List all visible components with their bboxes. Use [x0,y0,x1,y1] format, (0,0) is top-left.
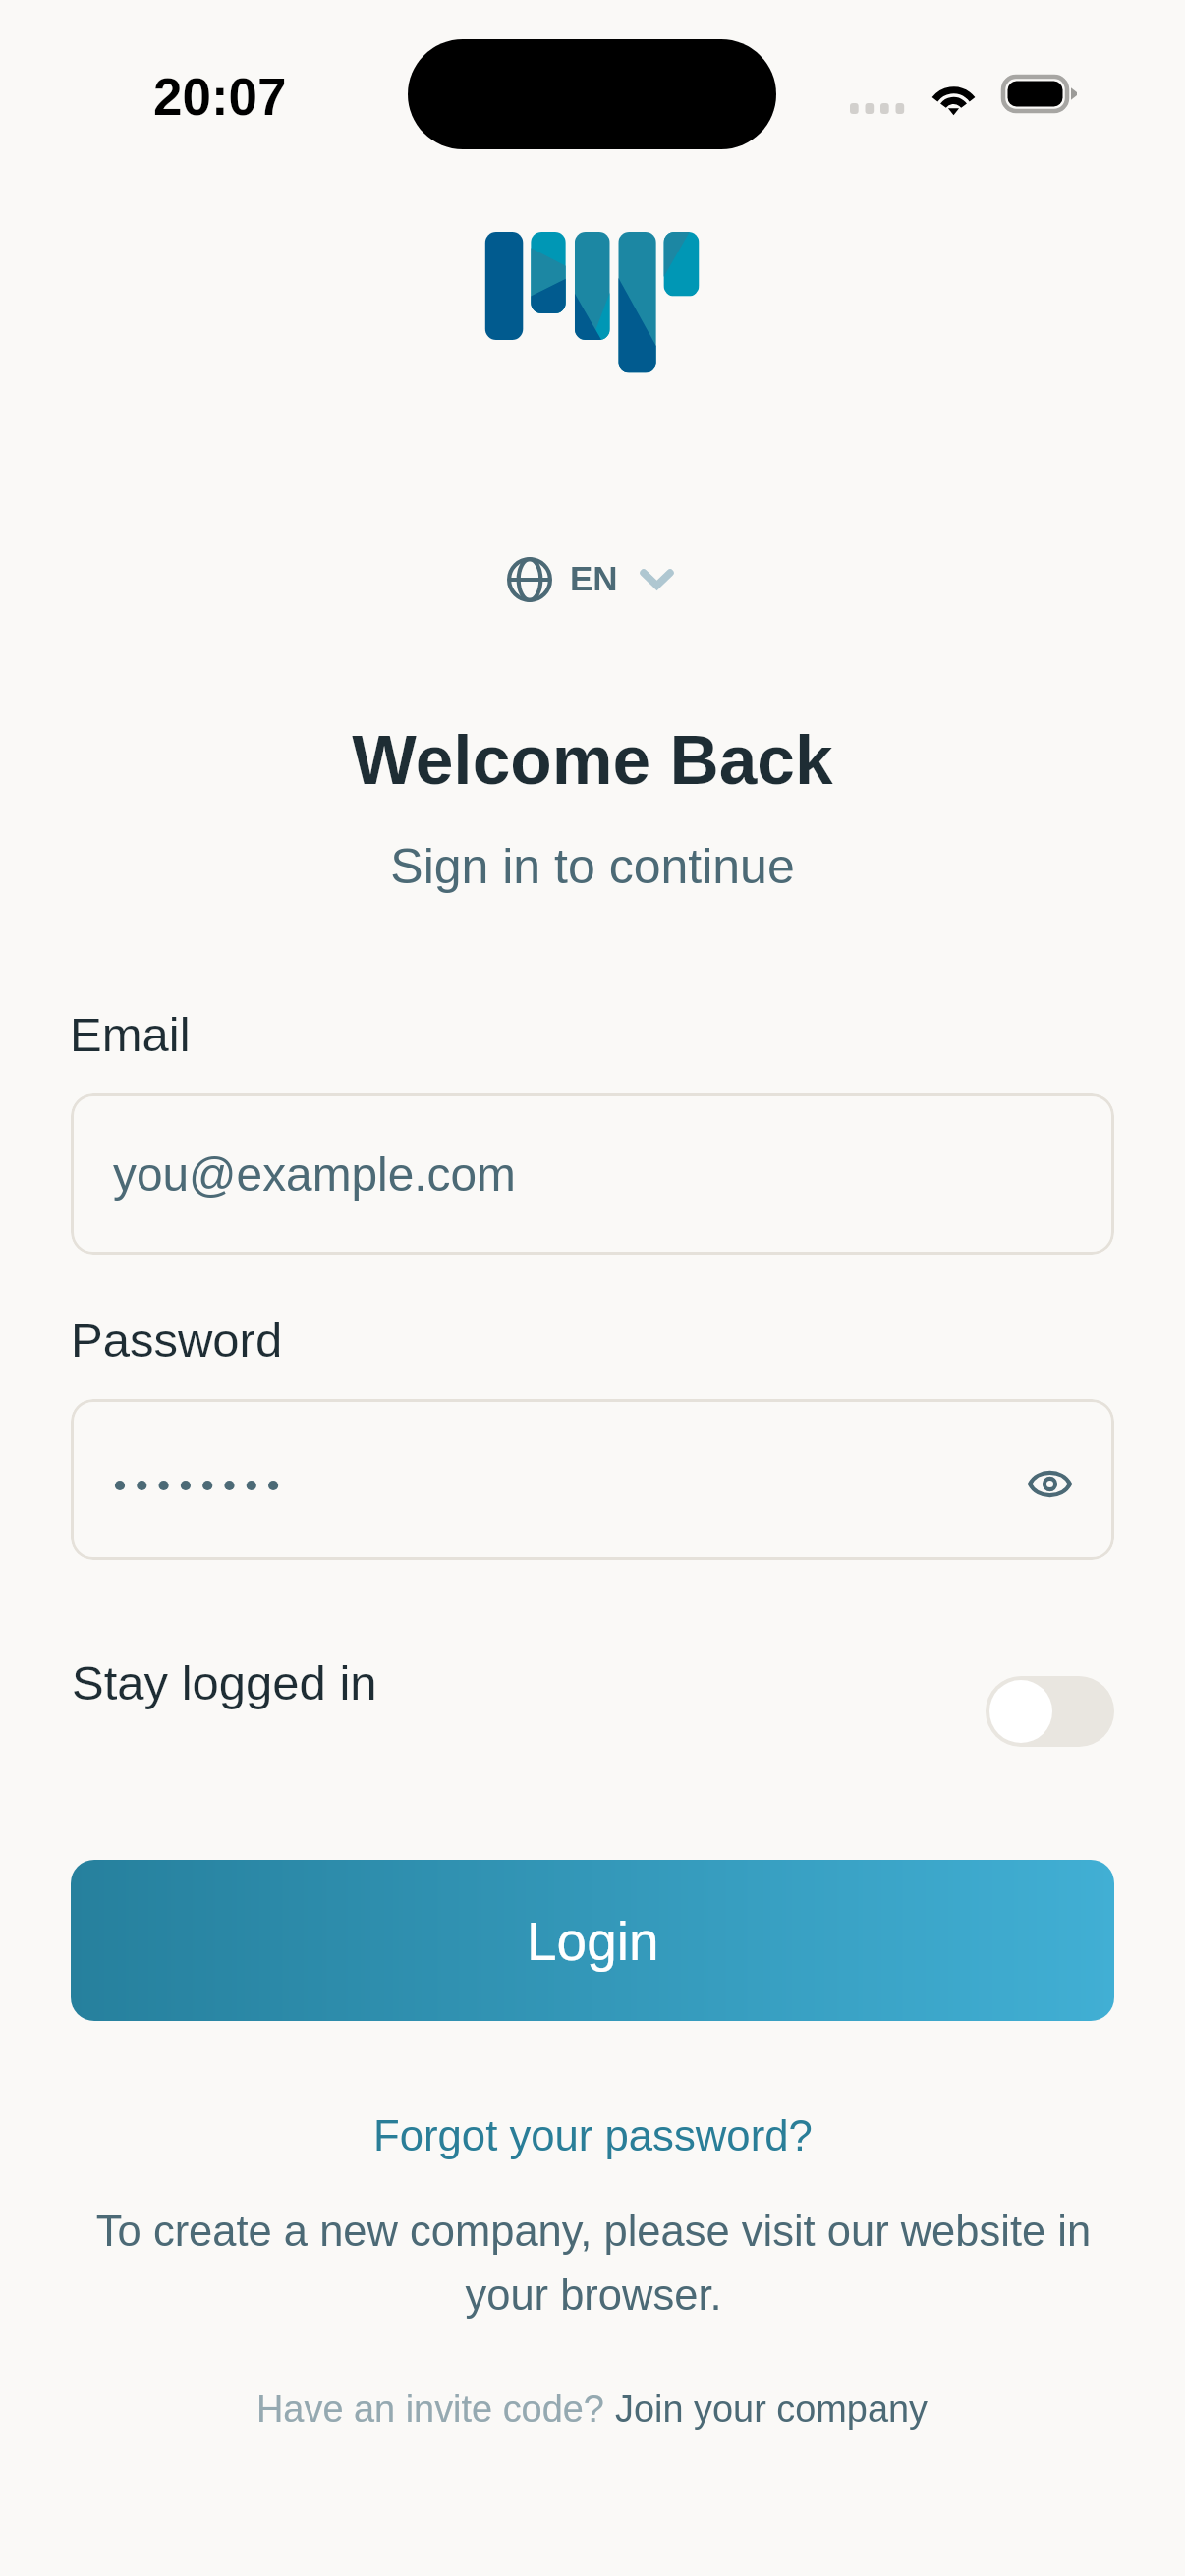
button[interactable]: EN [491,545,688,614]
staticText: Email [70,1008,191,1062]
button[interactable]: Show password [1012,1446,1087,1521]
button[interactable]: Show password [71,1399,1114,1560]
staticText: To create a new company, please visit ou… [75,2208,1112,2319]
button[interactable]: Forgot your password? [373,2111,813,2159]
staticText: Stay logged in [72,1656,377,1710]
staticText: Login [527,1911,659,1971]
staticText: Have an invite code? [256,2388,615,2430]
staticText: Join your company [615,2388,929,2430]
staticText: you@example.com [113,1148,516,1201]
button[interactable]: Stay logged in toggle [986,1676,1114,1747]
button[interactable]: Have an invite code? [0,2388,1185,2430]
staticText: Welcome Back [0,722,1185,799]
staticText: 20:07 [153,68,287,126]
button[interactable]: Login [71,1860,1114,2021]
staticText: Sign in to continue [0,839,1185,894]
button[interactable]: you@example.com [71,1093,1114,1255]
staticText: Password [71,1314,283,1368]
staticText: EN [570,559,618,597]
